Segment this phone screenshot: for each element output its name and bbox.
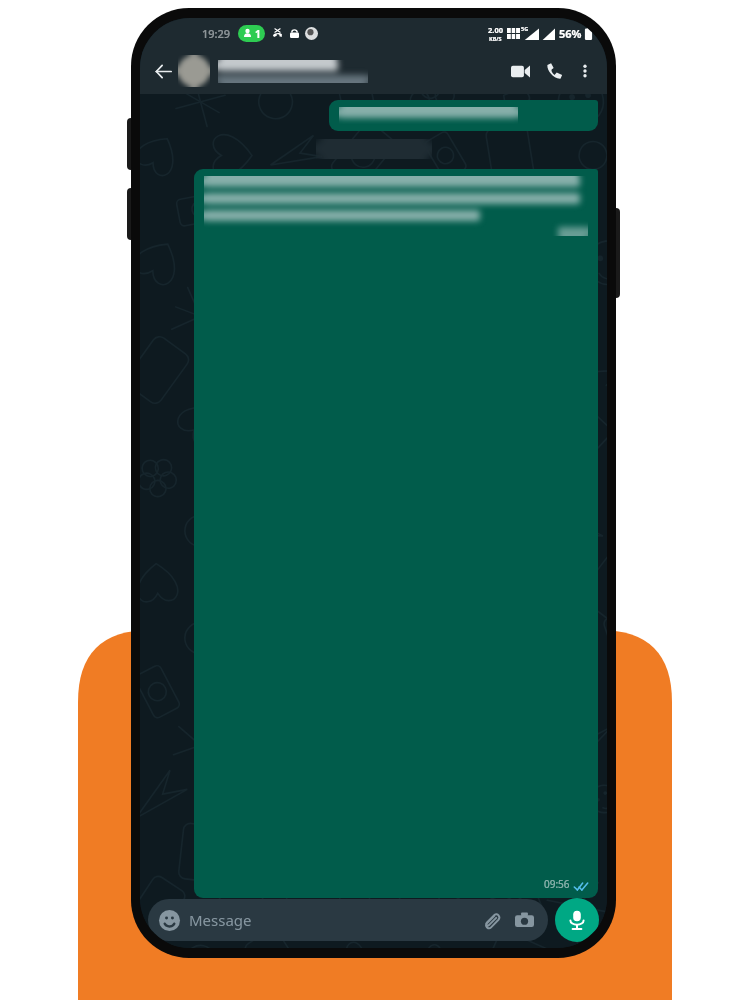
- staticText: 56%: [559, 26, 582, 41]
- button[interactable]: Attach: [477, 907, 503, 933]
- staticText: 2.00: [488, 25, 503, 35]
- staticText: 19:29: [202, 26, 231, 41]
- button[interactable]: [178, 48, 503, 94]
- staticText: 09:56: [544, 877, 570, 891]
- staticText: 5G: [521, 25, 529, 32]
- staticText: KB/S: [489, 35, 502, 42]
- staticText: Message: [189, 910, 477, 930]
- button[interactable]: Video call: [503, 54, 537, 88]
- button[interactable]: Back: [148, 56, 178, 86]
- staticText: 1: [255, 27, 261, 41]
- button[interactable]: Camera: [511, 907, 537, 933]
- button[interactable]: More options: [571, 57, 599, 85]
- button[interactable]: Voice call: [537, 54, 571, 88]
- button[interactable]: Voice message: [555, 898, 599, 942]
- button[interactable]: Message: [148, 899, 548, 941]
